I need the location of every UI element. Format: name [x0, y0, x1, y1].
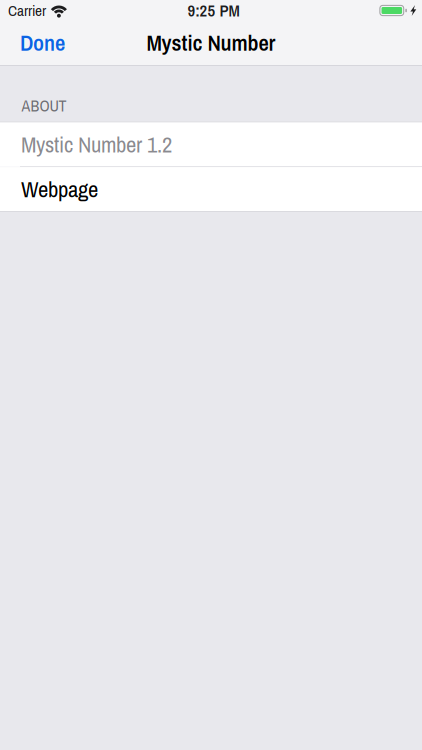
staticText: 9:25 PM	[187, 0, 239, 22]
staticText: ABOUT	[21, 95, 66, 116]
button[interactable]: Webpage	[0, 167, 422, 211]
staticText: Mystic Number	[146, 27, 275, 58]
button[interactable]: Done	[12, 20, 73, 64]
staticText: Done	[20, 27, 65, 58]
button[interactable]: Mystic Number 1.2	[0, 122, 422, 166]
staticText: Mystic Number 1.2	[21, 129, 172, 160]
staticText: Carrier	[8, 0, 46, 21]
staticText: Webpage	[21, 174, 98, 204]
